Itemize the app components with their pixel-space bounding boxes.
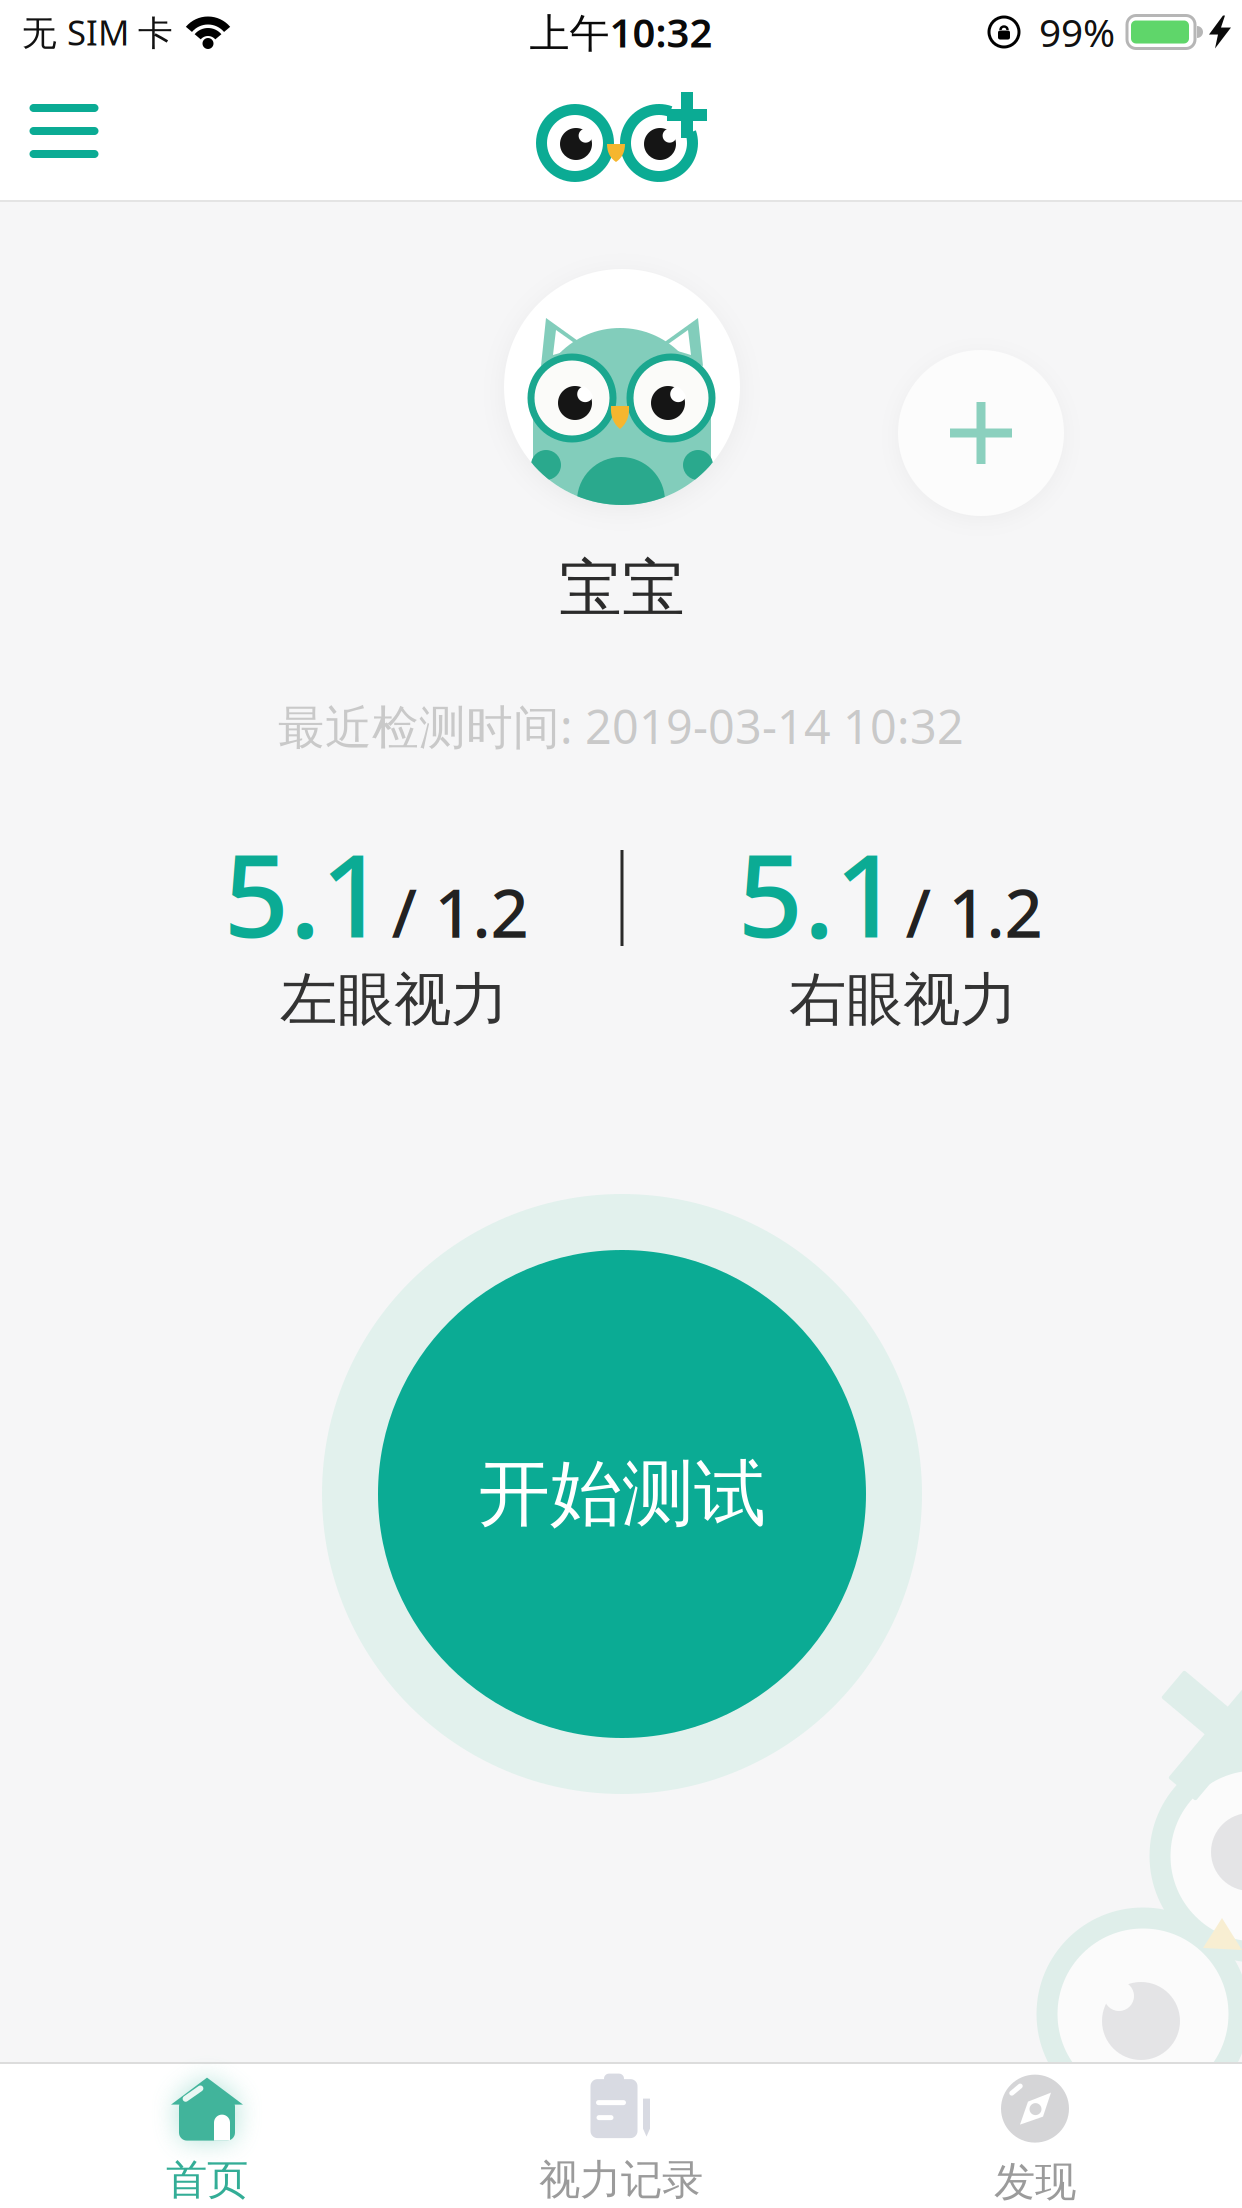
staticText: 视力记录 <box>539 2155 703 2205</box>
staticText: 首页 <box>166 2155 248 2205</box>
button[interactable]: 发现 <box>828 2069 1242 2208</box>
staticText: 开始测试 <box>478 1450 766 1538</box>
button[interactable]: 视力+ <box>460 64 780 174</box>
staticText: 左眼视力 <box>280 965 508 1035</box>
staticText: 无 SIM 卡 <box>22 9 173 55</box>
staticText: / 1.2 <box>391 868 528 956</box>
button[interactable]: 宝宝 <box>504 269 740 505</box>
button[interactable]: 添加宝宝 <box>898 350 1064 516</box>
staticText: 上午10:32 <box>529 5 712 58</box>
button[interactable]: 视力记录 <box>414 2069 828 2208</box>
button[interactable]: 菜单 <box>29 104 98 158</box>
staticText: 99% <box>1039 6 1115 58</box>
staticText: 右眼视力 <box>789 965 1017 1035</box>
staticText: 5.1 <box>223 817 386 969</box>
staticText: 最近检测时间: 2019-03-14 10:32 <box>278 695 964 757</box>
button[interactable]: 首页 <box>0 2069 414 2208</box>
staticText: 宝宝 <box>559 550 685 627</box>
button[interactable]: 开始测试 <box>322 1194 922 1794</box>
staticText: 5.1 <box>737 817 900 969</box>
staticText: 发现 <box>994 2157 1076 2207</box>
staticText: / 1.2 <box>905 868 1042 956</box>
